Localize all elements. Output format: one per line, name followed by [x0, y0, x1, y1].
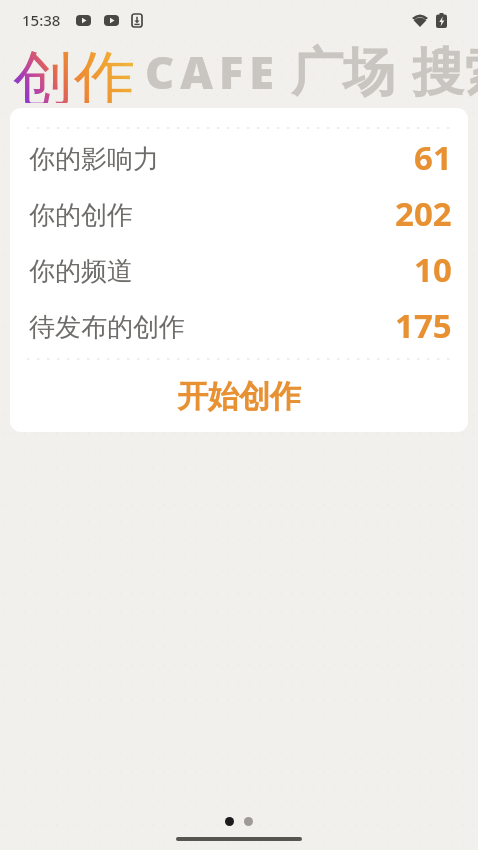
button[interactable]: Page 1 [225, 817, 234, 826]
staticText: 你的创作 [29, 199, 133, 232]
staticText: CAFE [145, 41, 280, 102]
other: YouTube notification [104, 15, 119, 26]
staticText: 202 [395, 191, 452, 236]
button[interactable]: CAFE [145, 41, 280, 102]
other: Battery [436, 13, 447, 28]
staticText: 广场 [291, 40, 395, 102]
staticText: 175 [395, 303, 452, 348]
button[interactable]: 广场 [291, 40, 395, 102]
button[interactable]: 你的影响力 [10, 129, 468, 185]
staticText: 61 [414, 135, 452, 180]
button[interactable]: 开始创作 [10, 360, 468, 432]
staticText: 搜索 [412, 40, 478, 102]
button[interactable]: Page 2 [244, 817, 253, 826]
staticText: 待发布的创作 [29, 311, 185, 344]
other: YouTube notification [76, 15, 91, 26]
other: Download [132, 14, 142, 27]
staticText: 10 [414, 247, 452, 292]
staticText: 创作 [13, 41, 135, 103]
staticText: 你的频道 [29, 255, 133, 288]
button[interactable]: 你的频道 [10, 241, 468, 297]
button[interactable]: 创作 [13, 41, 135, 103]
staticText: 开始创作 [177, 377, 301, 416]
button[interactable]: 搜索 [412, 40, 478, 102]
button[interactable]: 你的创作 [10, 185, 468, 241]
other: Wi-Fi [412, 15, 428, 27]
staticText: 15:38 [22, 10, 61, 30]
staticText: 你的影响力 [29, 143, 159, 176]
button[interactable]: 待发布的创作 [10, 297, 468, 353]
